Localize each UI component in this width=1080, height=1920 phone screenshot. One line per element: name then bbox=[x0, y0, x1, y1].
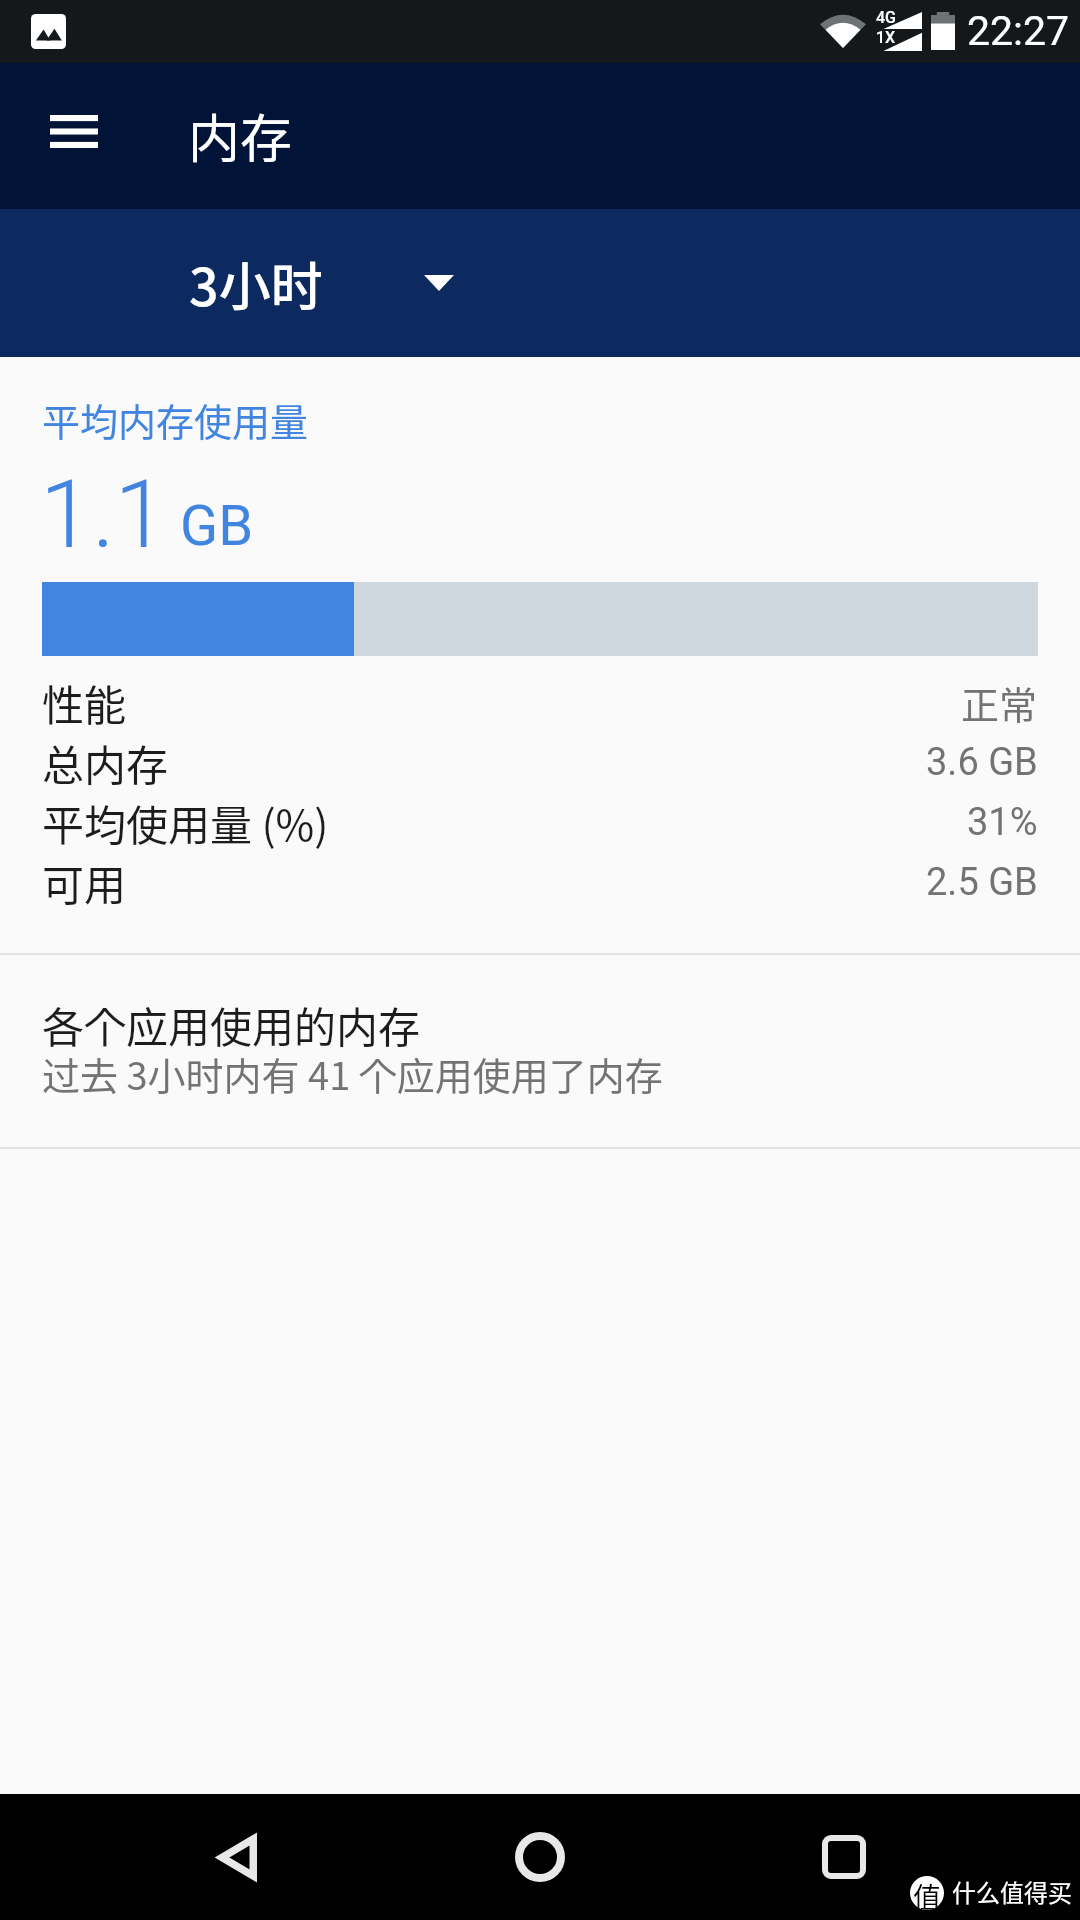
staticText: 4G bbox=[876, 8, 896, 27]
staticText: 什么值得买 bbox=[952, 1874, 1072, 1909]
staticText: 可用 bbox=[42, 852, 127, 912]
staticText: 各个应用使用的内存 bbox=[42, 994, 421, 1055]
staticText: 平均使用量 (%) bbox=[42, 792, 329, 852]
staticText: 3小时 bbox=[189, 246, 323, 321]
button[interactable]: Home bbox=[480, 1797, 600, 1917]
button[interactable]: 3小时 bbox=[0, 209, 1080, 357]
button[interactable]: 各个应用使用的内存 bbox=[0, 955, 1080, 1147]
staticText: 22:27 bbox=[967, 7, 1070, 55]
staticText: GB bbox=[180, 493, 254, 559]
staticText: 1.1 bbox=[40, 460, 167, 570]
staticText: 3.6 GB bbox=[926, 740, 1038, 785]
staticText: 2.5 GB bbox=[926, 860, 1038, 905]
staticText: 平均内存使用量 bbox=[42, 392, 309, 447]
staticText: 总内存 bbox=[42, 732, 169, 792]
staticText: 性能 bbox=[42, 672, 127, 732]
staticText: 31% bbox=[967, 800, 1038, 845]
staticText: 过去 3小时内有 41 个应用使用了内存 bbox=[42, 1046, 663, 1101]
button[interactable]: Recent apps bbox=[784, 1797, 904, 1917]
button[interactable]: Back bbox=[176, 1797, 296, 1917]
staticText: 内存 bbox=[188, 98, 293, 173]
staticText: 值 bbox=[913, 1876, 942, 1910]
staticText: 1X bbox=[876, 28, 896, 47]
staticText: 正常 bbox=[961, 675, 1038, 730]
button[interactable]: Open navigation drawer bbox=[26, 88, 122, 184]
